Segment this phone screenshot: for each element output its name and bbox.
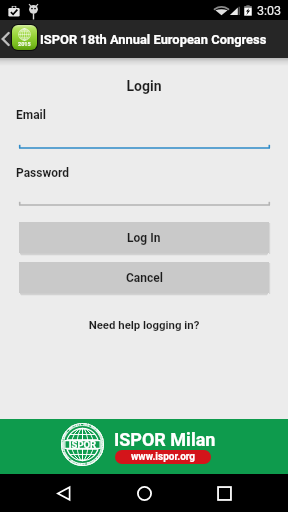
button[interactable]: Back — [0, 20, 38, 58]
button[interactable]: Need help logging in? — [0, 315, 288, 333]
button[interactable]: Cancel — [19, 262, 269, 293]
staticText: Password — [16, 166, 70, 180]
staticText: Cancel — [126, 271, 163, 285]
staticText: 2015 — [18, 41, 31, 47]
staticText: Login — [0, 78, 288, 94]
button[interactable]: Back — [40, 474, 88, 512]
staticText: Log In — [127, 231, 161, 245]
staticText: www.ispor.org — [131, 451, 196, 463]
staticText: ISPOR Milan — [114, 429, 216, 450]
staticText: Email — [16, 108, 46, 122]
button[interactable]: Log In — [19, 222, 269, 253]
staticText: Need help logging in? — [0, 318, 288, 331]
staticText: ISPOR — [66, 439, 99, 450]
button[interactable]: Recents — [200, 474, 248, 512]
button[interactable]: Home — [120, 474, 168, 512]
staticText: 3:03 — [257, 3, 282, 18]
staticText: ISPOR 18th Annual European Congress — [40, 32, 267, 47]
